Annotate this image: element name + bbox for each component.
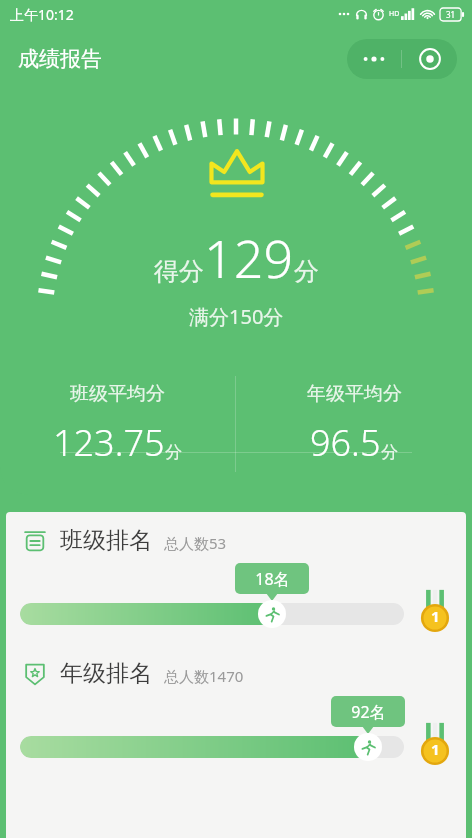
staticText: 96.5 xyxy=(310,418,381,467)
staticText: 总人数1470 xyxy=(164,666,244,686)
staticText: 成绩报告 xyxy=(18,46,102,72)
staticText: 18名 xyxy=(255,568,290,590)
staticText: 31 xyxy=(446,9,456,20)
button[interactable]: 年级平均分 xyxy=(236,382,472,467)
button[interactable]: 年级排名 xyxy=(6,659,466,762)
staticText: 总人数53 xyxy=(164,533,227,553)
staticText: 1 xyxy=(431,606,440,626)
button[interactable]: Target xyxy=(402,39,457,79)
staticText: HD xyxy=(389,9,400,19)
staticText: 得分 xyxy=(154,256,204,287)
staticText: 分 xyxy=(381,442,398,463)
staticText: 年级排名 xyxy=(60,659,152,688)
staticText: 分 xyxy=(165,442,182,463)
staticText: 班级平均分 xyxy=(70,382,165,406)
staticText: 班级排名 xyxy=(60,526,152,555)
button[interactable]: 班级排名 xyxy=(6,526,466,629)
staticText: 上午10:12 xyxy=(10,5,74,24)
button[interactable]: 班级平均分 xyxy=(0,382,235,467)
staticText: 满分150分 xyxy=(189,303,284,330)
staticText: 92名 xyxy=(351,701,386,723)
button[interactable]: More options xyxy=(347,39,401,79)
staticText: 分 xyxy=(294,256,319,287)
staticText: 年级平均分 xyxy=(307,382,402,406)
staticText: 1 xyxy=(431,739,440,759)
staticText: 123.75 xyxy=(53,418,165,467)
staticText: 129 xyxy=(204,222,294,293)
